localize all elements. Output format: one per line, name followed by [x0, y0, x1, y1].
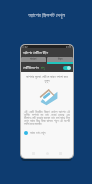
button[interactable]: Home [46, 152, 49, 155]
button[interactable]: আরও তথ্য দেখুন [24, 131, 70, 135]
staticText: ১১:৪৫ [22, 45, 28, 48]
button[interactable]: Toggle notifications [63, 66, 71, 70]
staticText: ৮৫% [66, 45, 72, 48]
staticText: অ্যাপের স্ক্রিনশট দেখুন [28, 11, 65, 19]
staticText: সাধারণ [30, 58, 37, 61]
staticText: উন্নত [58, 58, 63, 61]
staticText: এটি একটি বিস্তারিত বিবরণ যেখানে অ্যাপের … [24, 110, 70, 126]
staticText: চালু [41, 67, 45, 70]
staticText: আপনার সুরক্ষা সেটিংস আরও ভালো করে তুলুন [24, 74, 70, 83]
staticText: আরও তথ্য দেখুন [30, 131, 46, 135]
button[interactable]: উন্নত [47, 57, 73, 62]
staticText: অ্যাপের সেটিংস স্ক্রিন [23, 50, 48, 55]
staticText: নোটিফিকেশন [23, 66, 39, 70]
button[interactable]: সাধারণ [21, 57, 46, 62]
